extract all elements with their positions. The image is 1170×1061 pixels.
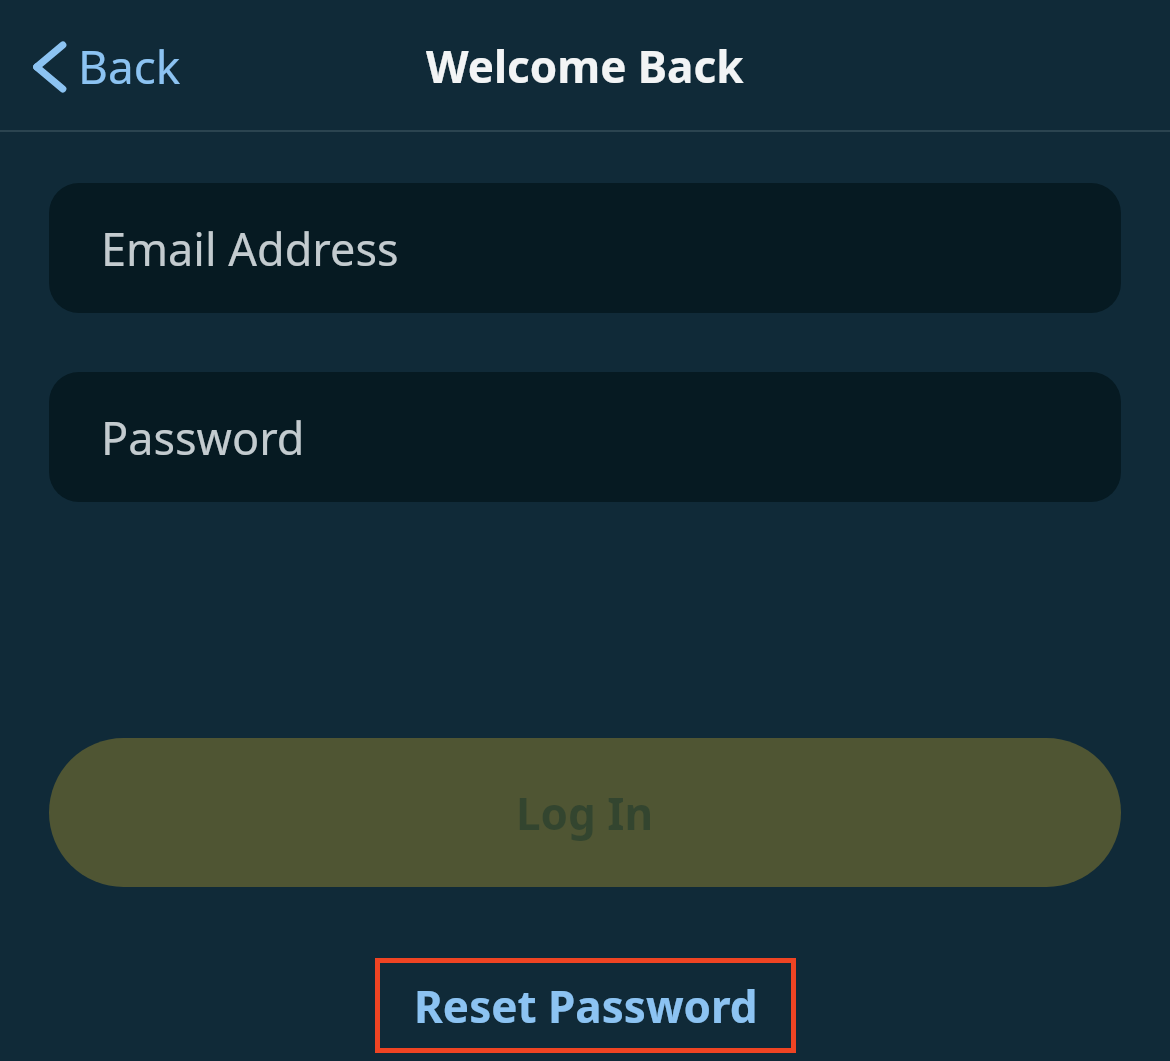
button[interactable]: Log In [49, 738, 1121, 887]
staticText: Log In [516, 783, 654, 843]
staticText: Email Address [101, 218, 399, 279]
button[interactable]: Reset Password [375, 958, 796, 1053]
button[interactable]: Email Address [49, 183, 1121, 313]
staticText: Welcome Back [426, 36, 744, 96]
staticText: Password [101, 407, 305, 468]
button[interactable]: Password [49, 372, 1121, 502]
button[interactable]: Back [18, 29, 189, 104]
staticText: Back [78, 35, 181, 98]
staticText: Reset Password [414, 976, 758, 1036]
